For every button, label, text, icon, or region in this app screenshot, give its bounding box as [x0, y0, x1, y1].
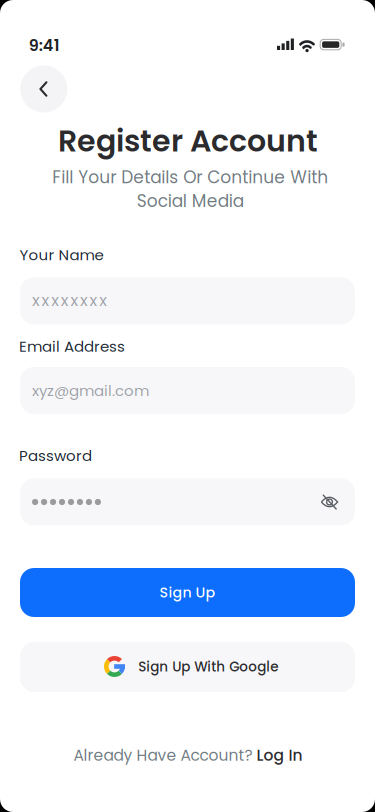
staticText: xyz@gmail.com: [32, 380, 149, 401]
button[interactable]: Password: [20, 478, 355, 525]
staticText: Fill Your Details Or Continue With Socia…: [52, 165, 328, 213]
staticText: Password: [19, 445, 92, 466]
button[interactable]: Email Address: [20, 367, 355, 414]
staticText: x: [99, 289, 107, 312]
button[interactable]: Already Have Account?: [73, 744, 302, 766]
staticText: Register Account: [58, 120, 318, 162]
staticText: Sign Up: [159, 583, 215, 602]
staticText: x: [70, 289, 78, 312]
staticText: x: [90, 289, 98, 312]
staticText: Your Name: [19, 244, 103, 265]
staticText: 9:41: [29, 34, 60, 56]
staticText: x: [32, 289, 40, 312]
staticText: x: [51, 289, 59, 312]
staticText: Already Have Account?: [73, 744, 252, 766]
button[interactable]: Your Name: [20, 277, 355, 324]
staticText: Log In: [256, 744, 302, 766]
button[interactable]: Sign Up With Google: [20, 642, 355, 692]
staticText: x: [42, 289, 50, 312]
staticText: x: [80, 289, 88, 312]
staticText: Sign Up With Google: [138, 657, 278, 676]
staticText: x: [61, 289, 69, 312]
button[interactable]: Sign Up: [20, 568, 355, 617]
button[interactable]: Back: [20, 65, 67, 112]
staticText: Email Address: [19, 336, 125, 357]
button[interactable]: Show password: [307, 480, 351, 524]
